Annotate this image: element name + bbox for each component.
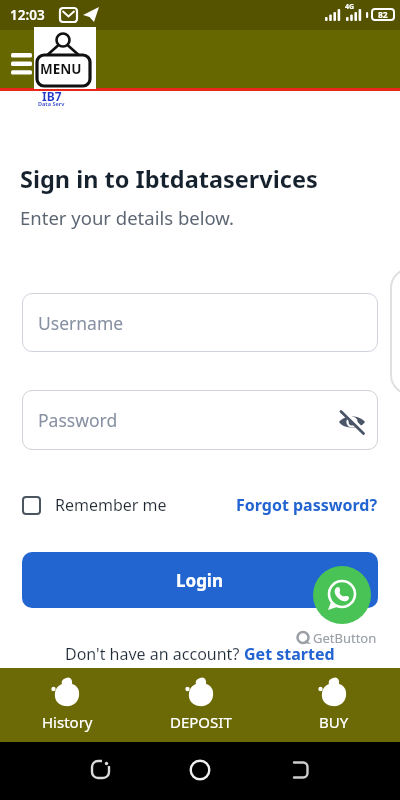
staticText: Remember me [55,494,167,516]
staticText: Login [176,569,224,592]
staticText: Enter your details below. [20,205,235,230]
button[interactable] [6,46,36,82]
staticText: History [42,712,93,732]
button[interactable]: Login [22,552,378,608]
button[interactable] [91,760,111,780]
button[interactable] [290,760,310,780]
button[interactable]: DEPOSIT [134,668,267,742]
staticText: 12:03 [10,6,45,24]
staticText: BUY [319,712,349,732]
button[interactable]: Username [22,293,378,352]
staticText: DEPOSIT [170,712,232,732]
button[interactable] [190,760,210,780]
staticText: Don't have an account? [65,643,244,665]
staticText: Username [38,311,124,335]
button[interactable]: BUY [267,668,400,742]
staticText: 4G [345,2,355,12]
button[interactable]: MENU [34,27,96,89]
button[interactable]: Password [22,390,378,450]
staticText: Password [38,408,118,432]
staticText: IB7 [42,88,62,104]
staticText: MENU [40,60,82,78]
staticText: Data Serv [38,100,65,107]
button[interactable]: Forgot password? [236,494,378,516]
button[interactable]: Remember me [22,494,167,516]
staticText: GetButton [313,629,377,647]
button[interactable] [313,566,371,624]
button[interactable] [339,411,365,433]
button[interactable]: Get started [244,643,335,665]
button[interactable]: History [0,668,134,742]
staticText: Sign in to Ibtdataservices [20,163,318,195]
staticText: 82 [378,9,388,21]
